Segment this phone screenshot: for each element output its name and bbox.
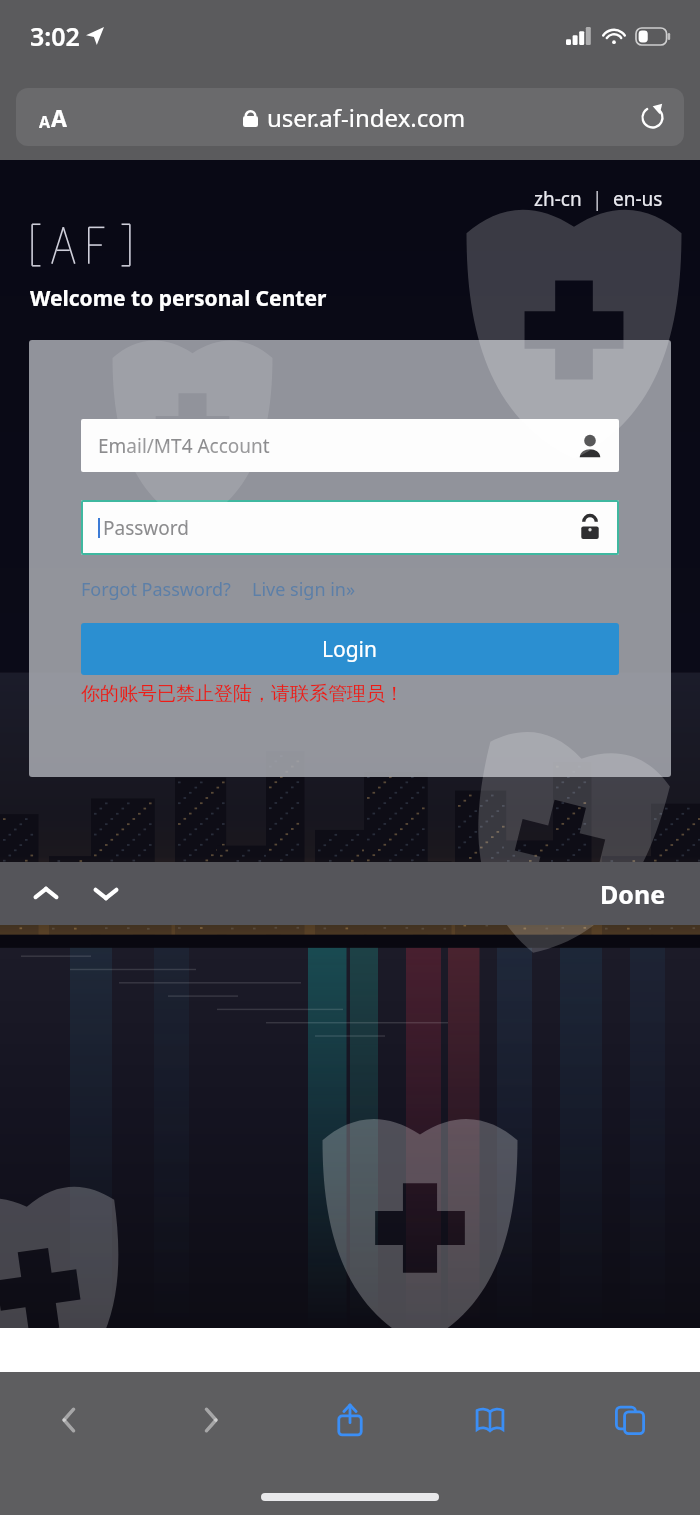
staticText: Forgot Password?: [81, 577, 231, 602]
staticText: Done: [600, 877, 666, 911]
button[interactable]: Previous field: [24, 872, 68, 916]
button[interactable]: Login: [81, 623, 619, 675]
button[interactable]: Next field: [84, 872, 128, 916]
button[interactable]: Done: [600, 877, 666, 911]
button[interactable]: Text size: [16, 88, 684, 146]
button[interactable]: Back: [0, 1372, 140, 1468]
staticText: A: [51, 102, 67, 133]
button[interactable]: Live sign in»: [252, 577, 356, 602]
staticText: 你的账号已禁止登陆，请联系管理员！: [81, 682, 404, 706]
button[interactable]: Forward: [140, 1372, 280, 1468]
staticText: |: [582, 186, 613, 212]
button[interactable]: zh-cn: [534, 186, 582, 212]
button[interactable]: Tabs: [560, 1372, 700, 1468]
button[interactable]: Bookmarks: [420, 1372, 560, 1468]
button[interactable]: en-us: [613, 186, 663, 212]
button[interactable]: Text size: [16, 88, 90, 146]
button[interactable]: Reload: [620, 88, 684, 146]
staticText: Login: [322, 635, 378, 664]
button[interactable]: Email/MT4 Account: [81, 419, 619, 472]
staticText: Email/MT4 Account: [98, 433, 270, 459]
button[interactable]: Forgot Password?: [81, 577, 231, 602]
staticText: 3:02: [30, 19, 80, 53]
staticText: user.af-index.com: [267, 101, 466, 134]
button[interactable]: Share: [280, 1372, 420, 1468]
staticText: Live sign in»: [252, 577, 356, 602]
staticText: Welcome to personal Center: [30, 284, 327, 313]
button[interactable]: Password: [81, 500, 619, 555]
staticText: A: [39, 111, 51, 133]
staticText: Password: [103, 515, 189, 541]
staticText: en-us: [613, 186, 663, 212]
staticText: zh-cn: [534, 186, 582, 212]
